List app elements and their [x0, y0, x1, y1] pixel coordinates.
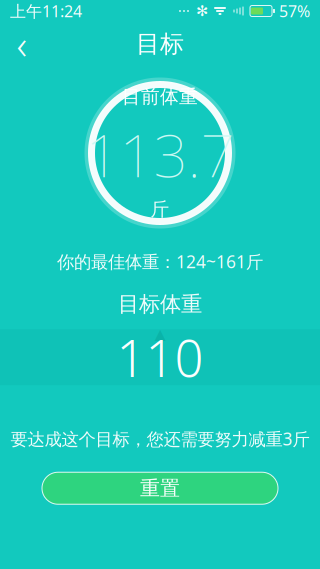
staticText: ▲: [154, 326, 165, 342]
staticText: 目标体重: [118, 291, 202, 317]
button[interactable]: Back: [0, 22, 44, 66]
staticText: ‹: [16, 17, 27, 70]
staticText: 110: [116, 324, 203, 391]
staticText: 你的最佳体重：124~161斤: [57, 250, 263, 273]
staticText: 要达成这个目标，您还需要努力减重3斤: [10, 427, 309, 450]
staticText: 目前体重: [122, 85, 198, 108]
staticText: 目标: [136, 29, 184, 59]
button[interactable]: 重置: [42, 472, 278, 504]
staticText: 57%: [279, 0, 310, 22]
staticText: ✻: [196, 3, 208, 19]
staticText: 上午11:24: [10, 0, 82, 22]
staticText: 113.7: [85, 114, 234, 194]
staticText: 斤: [150, 198, 169, 221]
staticText: 重置: [140, 476, 180, 501]
